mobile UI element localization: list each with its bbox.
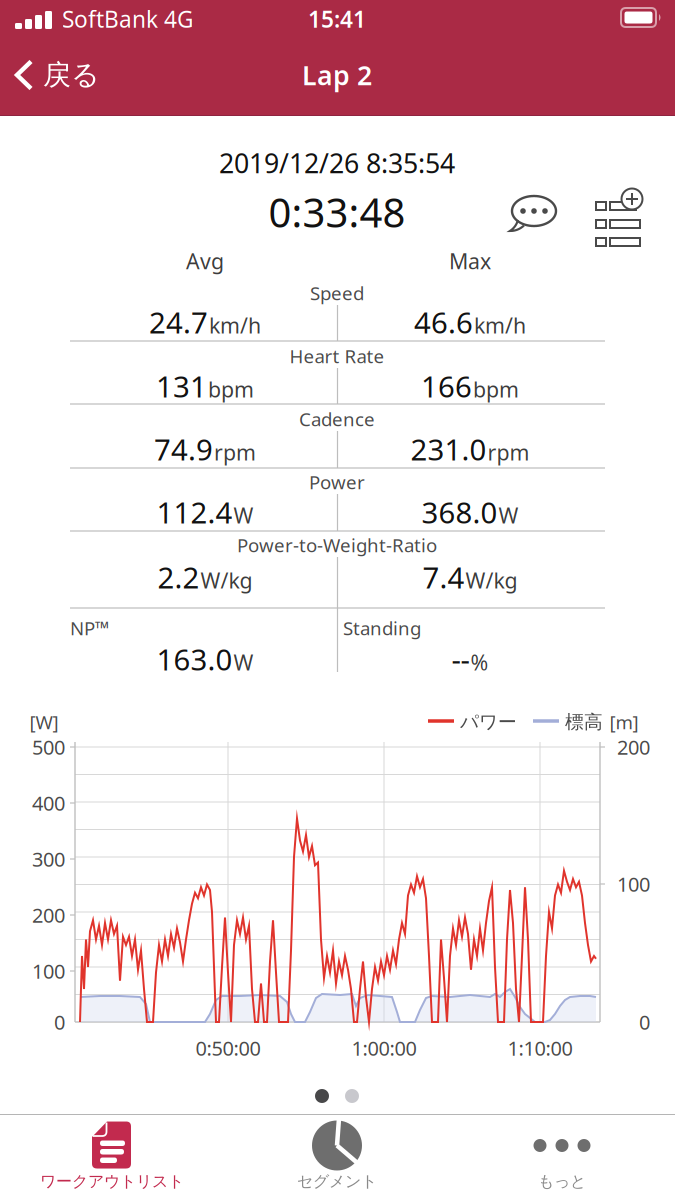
staticText: 368.0 [421,492,497,531]
staticText: 0:50:00 [195,1035,260,1061]
staticText: 2019/12/26 8:35:54 [219,145,455,181]
staticText: 2.2 [157,557,199,596]
staticText: Avg [186,247,224,275]
staticText: km/h [474,311,526,339]
staticText: Lap 2 [302,57,372,93]
staticText: % [470,648,488,676]
staticText: [W] [29,710,58,734]
staticText: NP™ [70,616,109,640]
button[interactable] [510,195,558,235]
staticText: Standing [343,616,421,640]
staticText: bpm [208,375,254,403]
staticText: km/h [209,311,261,339]
button[interactable] [307,1082,367,1110]
staticText: Max [449,247,491,275]
staticText: ワークアウトリスト [40,1172,184,1191]
staticText: 46.6 [414,302,473,341]
staticText: 200 [617,734,650,760]
staticText: セグメント [297,1172,377,1191]
staticText: 15:41 [308,4,366,34]
staticText: SoftBank 4G [62,4,194,34]
staticText: 163.0 [156,639,232,678]
staticText: 112.4 [156,492,232,531]
staticText: W/kg [465,566,517,594]
staticText: W [498,501,518,529]
staticText: 1:00:00 [351,1035,416,1061]
staticText: 74.9 [154,429,213,468]
staticText: W [233,648,253,676]
staticText: Power-to-Weight-Ratio [237,533,437,557]
staticText: 0 [54,1009,65,1035]
staticText: Power [309,470,365,494]
button[interactable]: もっと [458,1114,666,1199]
button[interactable]: ワークアウトリスト [8,1114,216,1199]
staticText: 131 [156,366,207,405]
staticText: 166 [421,366,472,405]
staticText: 400 [32,790,65,816]
staticText: [m] [609,710,638,734]
staticText: 戻る [43,58,100,92]
staticText: -- [451,639,469,678]
staticText: 200 [32,902,65,928]
staticText: 100 [32,958,65,984]
button[interactable]: 戻る [13,50,123,100]
staticText: もっと [538,1172,586,1191]
staticText: Speed [310,281,364,305]
staticText: 1:10:00 [507,1035,572,1061]
staticText: 24.7 [149,302,208,341]
staticText: 0:33:48 [268,185,405,238]
staticText: rpm [214,438,256,466]
staticText: W [233,501,253,529]
staticText: 標高 [565,710,603,733]
staticText: Cadence [299,407,375,431]
staticText: bpm [473,375,519,403]
staticText: W/kg [200,566,252,594]
staticText: 300 [32,846,65,872]
button[interactable] [595,188,643,248]
staticText: 7.4 [422,557,464,596]
staticText: 100 [617,871,650,897]
staticText: Heart Rate [289,344,384,368]
staticText: rpm [487,438,529,466]
button[interactable]: セグメント [233,1114,441,1199]
staticText: 231.0 [410,429,486,468]
staticText: 0 [639,1009,650,1035]
staticText: 500 [32,734,65,760]
staticText: パワー [460,710,517,733]
